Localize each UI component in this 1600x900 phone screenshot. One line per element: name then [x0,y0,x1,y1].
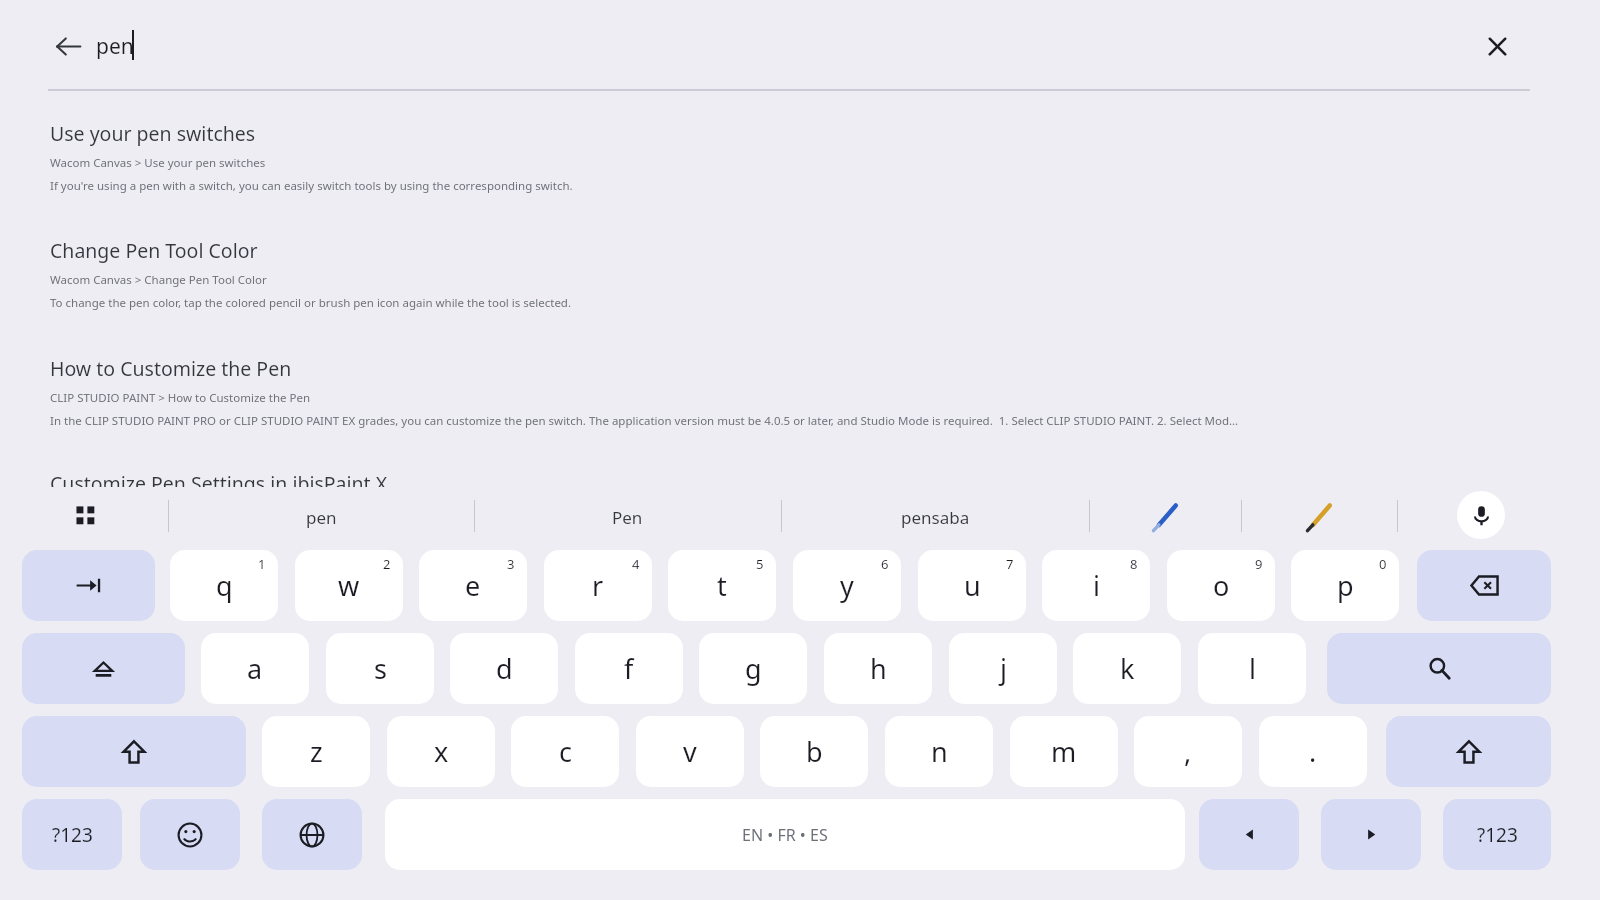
button[interactable]: Clear search [1475,24,1519,68]
staticText: pen [306,506,337,529]
staticText: Pen [612,506,643,529]
staticText: ?123 [1477,822,1518,848]
staticText: q [216,567,233,604]
staticText: d [496,650,513,687]
button[interactable]: u [918,550,1026,621]
button[interactable]: Search [1327,633,1551,704]
button[interactable]: k [1073,633,1181,704]
button[interactable]: g [699,633,807,704]
button[interactable]: Shift [22,716,246,787]
button[interactable]: Pen emoji [1089,487,1241,547]
button[interactable]: Change Pen Tool Color [0,237,1600,311]
button[interactable]: o [1167,550,1275,621]
button[interactable]: ?123 [22,799,122,870]
button[interactable]: d [450,633,558,704]
button[interactable]: t [668,550,776,621]
staticText: n [931,733,948,770]
button[interactable]: Move cursor left [1199,799,1299,870]
button[interactable]: Clipboard [62,497,108,535]
staticText: Change Pen Tool Color [50,237,258,264]
button[interactable]: f [575,633,683,704]
button[interactable]: . [1259,716,1367,787]
staticText: f [624,650,634,687]
button[interactable]: ?123 [1443,799,1551,870]
staticText: v [683,733,697,770]
staticText: r [592,567,604,604]
staticText: w [338,567,360,604]
button[interactable]: Voice input [1457,491,1505,539]
staticText: 4 [632,555,640,573]
button[interactable]: Backspace [1417,550,1551,621]
button[interactable]: x [387,716,495,787]
staticText: p [1337,567,1354,604]
staticText: z [310,733,323,770]
button[interactable]: Use your pen switches [0,120,1600,194]
staticText: Customize Pen Settings in ibisPaint X [50,470,388,488]
staticText: Wacom Canvas > Use your pen switches [50,155,266,171]
staticText: s [374,650,387,687]
staticText: y [840,567,854,604]
staticText: If you're using a pen with a switch, you… [50,178,573,194]
button[interactable]: s [326,633,434,704]
staticText: j [1000,650,1007,687]
staticText: In the CLIP STUDIO PAINT PRO or CLIP STU… [50,413,1239,429]
button[interactable]: How to Customize the Pen [0,355,1600,429]
button[interactable]: v [636,716,744,787]
button[interactable]: y [793,550,901,621]
staticText: m [1051,733,1077,770]
staticText: 0 [1379,555,1387,573]
button[interactable]: h [824,633,932,704]
button[interactable]: Pen [474,487,781,547]
button[interactable]: w [295,550,403,621]
staticText: 6 [881,555,889,573]
button[interactable]: q [170,550,278,621]
button[interactable]: Tab [22,550,155,621]
button[interactable]: i [1042,550,1150,621]
staticText: 2 [383,555,391,573]
button[interactable]: Customize Pen Settings in ibisPaint X [0,470,1600,488]
button[interactable]: Emoji [140,799,240,870]
button[interactable]: r [544,550,652,621]
staticText: c [559,733,572,770]
staticText: 8 [1130,555,1138,573]
staticText: o [1213,567,1230,604]
staticText: 1 [258,555,266,573]
staticText: k [1120,650,1135,687]
button[interactable]: c [511,716,619,787]
button[interactable]: e [419,550,527,621]
button[interactable]: m [1010,716,1118,787]
button[interactable]: p [1291,550,1399,621]
staticText: h [870,650,887,687]
button[interactable]: , [1134,716,1242,787]
staticText: How to Customize the Pen [50,355,292,382]
button[interactable]: pensaba [781,487,1089,547]
staticText: . [1309,733,1317,770]
button[interactable]: Shift [1386,716,1551,787]
staticText: e [465,567,481,604]
staticText: 7 [1006,555,1014,573]
button[interactable]: n [885,716,993,787]
staticText: To change the pen color, tap the colored… [50,295,572,311]
button[interactable]: Back [47,25,89,67]
staticText: a [247,650,263,687]
button[interactable]: EN • FR • ES [385,799,1185,870]
staticText: 9 [1255,555,1263,573]
staticText: CLIP STUDIO PAINT > How to Customize the… [50,390,311,406]
button[interactable]: j [949,633,1057,704]
button[interactable]: Change keyboard language [262,799,362,870]
staticText: , [1184,733,1192,770]
staticText: 5 [756,555,764,573]
button[interactable]: Fountain pen emoji [1241,487,1397,547]
button[interactable]: b [760,716,868,787]
button[interactable]: Caps lock [22,633,185,704]
staticText: Use your pen switches [50,120,256,147]
staticText: 3 [507,555,515,573]
button[interactable]: z [262,716,370,787]
button[interactable]: pen [168,487,474,547]
staticText: i [1093,567,1100,604]
staticText: ?123 [52,822,93,848]
button[interactable]: a [201,633,309,704]
staticText: Wacom Canvas > Change Pen Tool Color [50,272,267,288]
button[interactable]: l [1198,633,1306,704]
button[interactable]: Move cursor right [1321,799,1421,870]
